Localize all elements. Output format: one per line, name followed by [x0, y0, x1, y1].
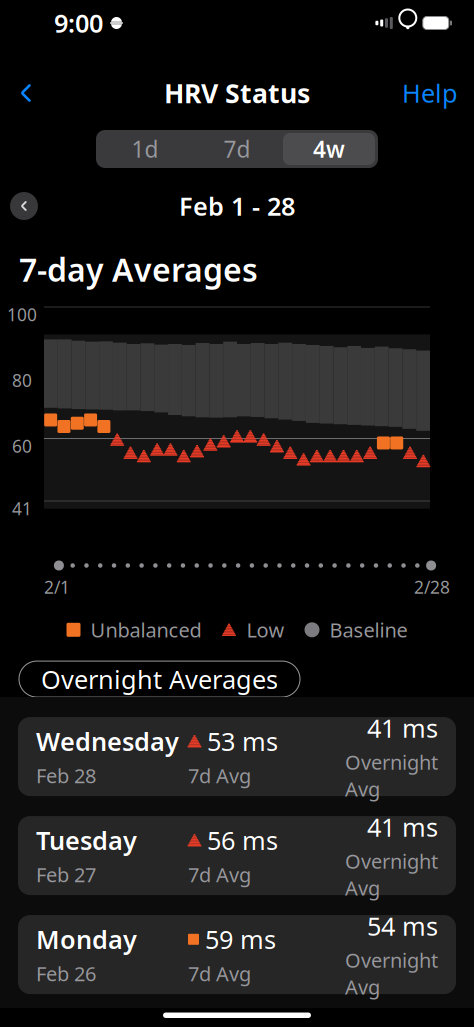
staticText: Overnight Averages	[41, 662, 278, 696]
staticText: 41 ms	[367, 810, 438, 844]
button[interactable]: Wednesday	[18, 717, 456, 796]
staticText: HRV Status	[164, 75, 310, 111]
staticText: 4w	[313, 134, 345, 164]
staticText: Low	[246, 616, 284, 643]
staticText: 100	[7, 303, 37, 326]
button[interactable]: Monday	[18, 915, 456, 994]
staticText: 60	[12, 434, 32, 457]
button[interactable]: 7d	[191, 133, 283, 165]
button[interactable]: Overnight Averages	[19, 661, 300, 697]
staticText: Tuesday	[36, 823, 137, 857]
button[interactable]: Previous period	[7, 189, 41, 223]
staticText: 9:00	[54, 6, 103, 40]
staticText: Unbalanced	[90, 616, 201, 643]
staticText: 59 ms	[205, 922, 276, 956]
staticText: 7d Avg	[188, 861, 251, 888]
staticText: 1d	[131, 134, 158, 164]
staticText: 7d	[223, 134, 250, 164]
staticText: 80	[12, 369, 32, 392]
staticText: 53 ms	[207, 724, 278, 758]
staticText: Baseline	[329, 616, 407, 643]
button[interactable]: 4w	[283, 133, 375, 165]
staticText: Feb 1 - 28	[179, 189, 295, 223]
staticText: Overnight Avg	[345, 749, 438, 802]
staticText: Overnight Avg	[345, 848, 438, 901]
staticText: 2/28	[414, 575, 450, 598]
staticText: 7-day Averages	[19, 248, 258, 290]
button[interactable]: 1d	[99, 133, 191, 165]
staticText: 56 ms	[207, 823, 278, 857]
staticText: Monday	[36, 922, 137, 956]
staticText: Feb 28	[36, 762, 96, 789]
staticText: Feb 27	[36, 861, 96, 888]
button[interactable]: Tuesday	[18, 816, 456, 895]
staticText: 7d Avg	[188, 960, 251, 987]
button[interactable]: Help	[386, 71, 474, 115]
button[interactable]: Back	[0, 71, 52, 115]
staticText: 41	[12, 497, 32, 520]
staticText: Feb 26	[36, 960, 96, 987]
staticText: Help	[402, 76, 458, 110]
staticText: 54 ms	[367, 909, 438, 943]
staticText: Overnight Avg	[345, 947, 438, 1000]
staticText: 2/1	[44, 575, 70, 598]
staticText: 7d Avg	[188, 762, 251, 789]
staticText: 41 ms	[367, 711, 438, 745]
staticText: Wednesday	[36, 724, 179, 758]
